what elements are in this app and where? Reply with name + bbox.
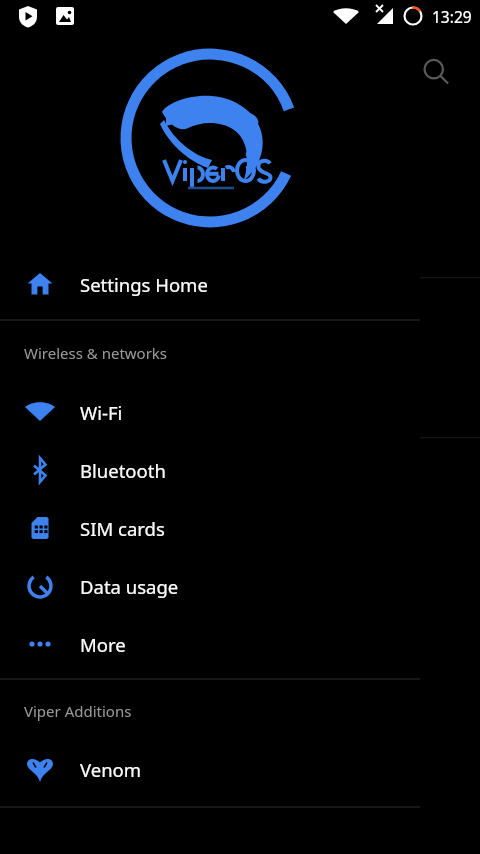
staticText: More — [80, 632, 126, 657]
button[interactable]: Data usage — [0, 557, 480, 615]
staticText: Settings Home — [80, 272, 208, 297]
staticText: Wi-Fi — [80, 400, 123, 425]
staticText: SIM cards — [80, 516, 165, 541]
staticText: Venom — [80, 757, 142, 782]
button[interactable]: Venom — [0, 740, 480, 798]
button[interactable]: Bluetooth — [0, 441, 480, 499]
staticText: Wireless & networks — [24, 343, 168, 363]
button[interactable]: More — [0, 615, 480, 673]
staticText: 13:29 — [432, 6, 472, 27]
staticText: Viper Additions — [24, 701, 132, 721]
staticText: Data usage — [80, 574, 179, 599]
button[interactable]: SIM cards — [0, 499, 480, 557]
staticText: Bluetooth — [80, 458, 166, 483]
button[interactable]: Settings Home — [0, 248, 480, 320]
button[interactable]: Search — [404, 40, 468, 104]
button[interactable]: Wi-Fi — [0, 383, 480, 441]
